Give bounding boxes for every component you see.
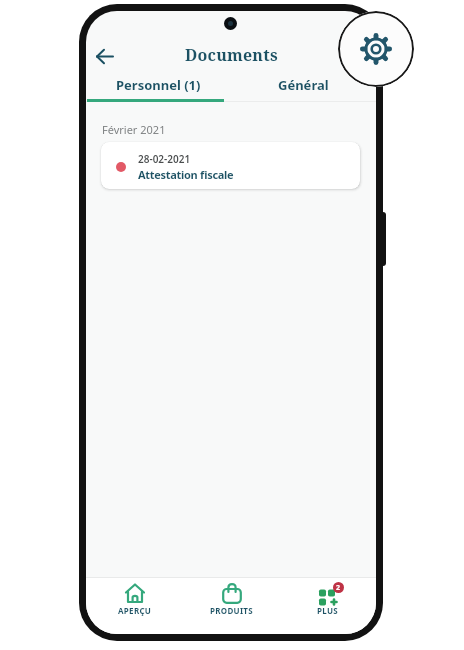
button[interactable]: 2 (280, 577, 376, 634)
button[interactable] (338, 11, 414, 87)
button[interactable]: APERÇU (86, 577, 183, 634)
staticText: PRODUITS (210, 605, 253, 616)
staticText: Documents (185, 44, 278, 64)
button[interactable]: Personnel (1) (86, 72, 231, 98)
staticText: APERÇU (118, 605, 152, 616)
staticText: Attestation fiscale (138, 167, 234, 182)
staticText: Général (278, 76, 329, 94)
staticText: 28-02-2021 (138, 152, 191, 166)
staticText: PLUS (317, 605, 339, 616)
staticText: Personnel (1) (116, 76, 201, 94)
staticText: 2 (336, 583, 341, 593)
staticText: Février 2021 (102, 122, 166, 137)
button[interactable]: PRODUITS (183, 577, 280, 634)
button[interactable]: Général (231, 72, 376, 98)
button[interactable]: 28-02-2021 (101, 142, 360, 189)
button[interactable] (92, 45, 118, 67)
